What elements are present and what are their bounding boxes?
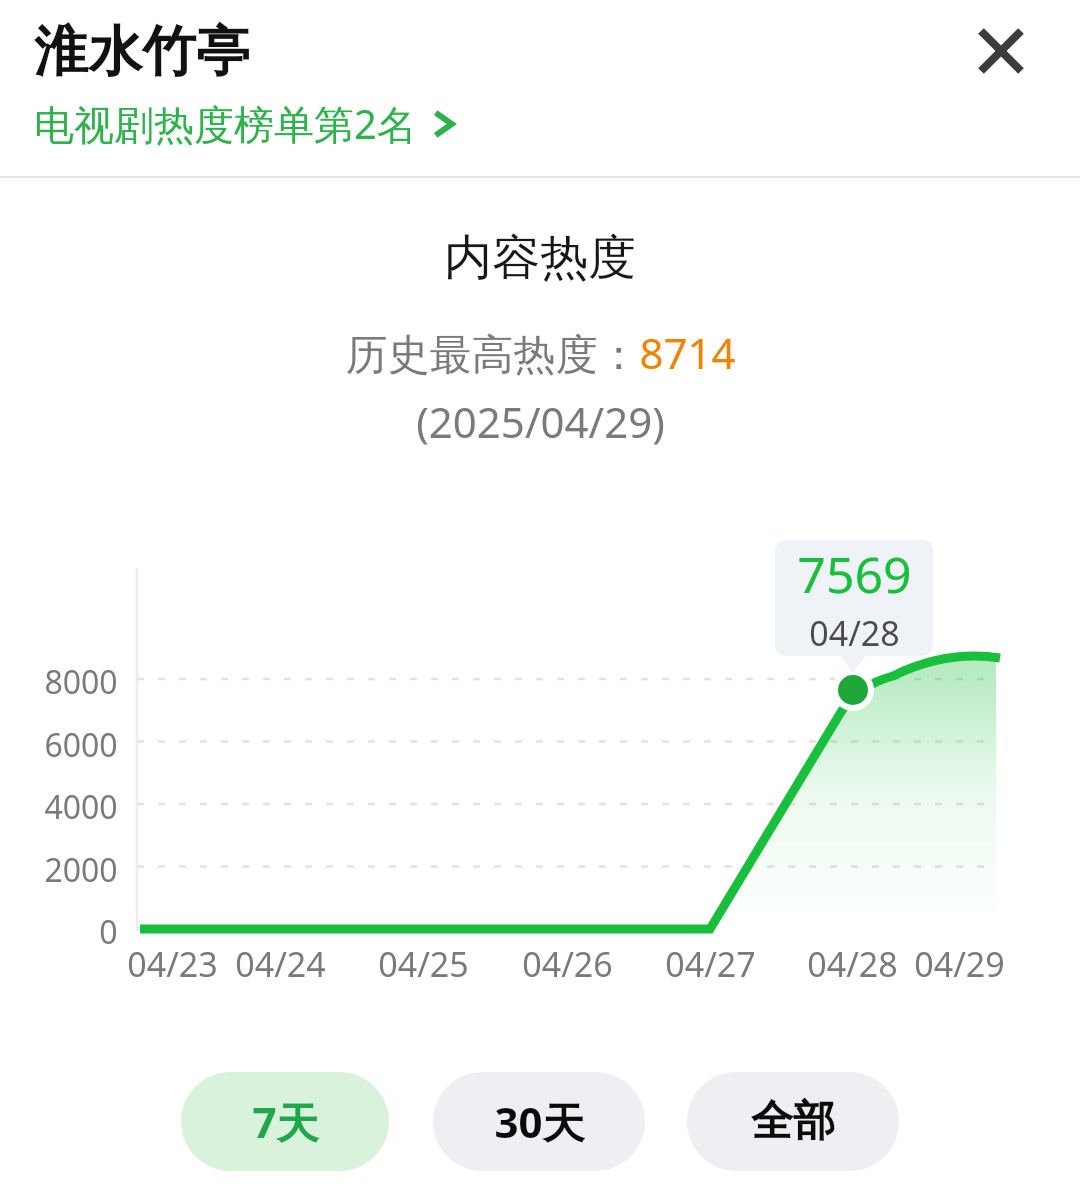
- staticText: 电视剧热度榜单第2名: [34, 96, 417, 151]
- staticText: 4000: [44, 785, 118, 829]
- staticText: 全部: [751, 1095, 835, 1148]
- staticText: 04/24: [235, 941, 326, 987]
- staticText: 04/28: [809, 610, 900, 656]
- staticText: 0: [99, 910, 118, 954]
- staticText: 2000: [44, 848, 118, 892]
- staticText: 04/28: [807, 941, 898, 987]
- staticText: 04/27: [665, 941, 756, 987]
- staticText: 30天: [494, 1093, 585, 1150]
- button[interactable]: 全部: [687, 1072, 899, 1171]
- staticText: 淮水竹亭: [34, 18, 250, 86]
- button[interactable]: Close: [962, 12, 1040, 90]
- staticText: 7569: [797, 540, 912, 608]
- staticText: 内容热度: [444, 228, 636, 288]
- staticText: (2025/04/29): [416, 393, 665, 450]
- button[interactable]: 30天: [433, 1072, 645, 1171]
- button[interactable]: 7天: [181, 1072, 389, 1171]
- staticText: 8000: [44, 660, 118, 704]
- staticText: 7天: [252, 1093, 319, 1150]
- staticText: 04/29: [914, 941, 1005, 987]
- staticText: 04/25: [378, 941, 469, 987]
- staticText: 历史最高热度：8714: [345, 324, 736, 381]
- button[interactable]: 电视剧热度榜单第2名: [34, 96, 457, 151]
- staticText: 6000: [44, 723, 118, 767]
- staticText: 04/26: [522, 941, 613, 987]
- staticText: 04/23: [127, 941, 218, 987]
